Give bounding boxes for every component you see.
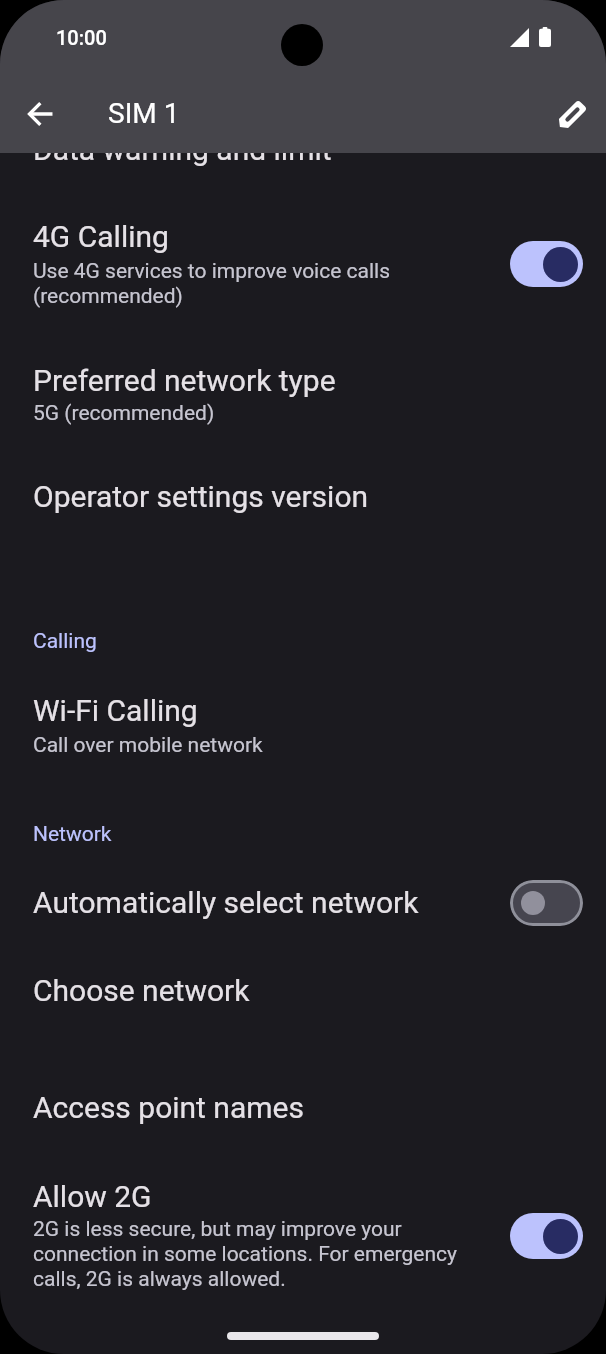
button[interactable]: Wi-Fi Calling — [0, 688, 606, 763]
staticText: Operator settings version — [33, 480, 369, 514]
staticText: Wi-Fi Calling — [33, 694, 198, 728]
staticText: Data warning and limit — [33, 133, 332, 167]
staticText: Preferred network type — [33, 364, 336, 398]
staticText: Call over mobile network — [33, 732, 263, 757]
button[interactable]: Choose network — [0, 968, 606, 1014]
staticText: SIM 1 — [108, 97, 180, 130]
button[interactable]: Switch on — [510, 1213, 583, 1259]
staticText: Use 4G services to improve voice calls (… — [33, 258, 445, 308]
staticText: 2G is less secure, but may improve your … — [33, 1216, 465, 1291]
button[interactable]: Automatically select network — [0, 874, 606, 932]
button[interactable]: Preferred network type — [0, 358, 606, 431]
button[interactable]: Switch off — [510, 880, 583, 926]
staticText: Choose network — [33, 974, 250, 1008]
button[interactable]: Edit — [540, 84, 602, 146]
staticText: Access point names — [33, 1091, 304, 1125]
staticText: 4G Calling — [33, 220, 169, 254]
button[interactable]: Allow 2G — [0, 1174, 606, 1297]
button[interactable]: Access point names — [0, 1085, 606, 1131]
button[interactable]: Back — [10, 83, 72, 145]
staticText: Allow 2G — [33, 1180, 152, 1214]
button[interactable]: Operator settings version — [0, 474, 606, 520]
staticText: Calling — [33, 629, 97, 654]
staticText: Network — [33, 822, 112, 847]
staticText: 10:00 — [56, 26, 107, 49]
button[interactable]: Switch on — [510, 241, 583, 287]
staticText: 5G (recommended) — [33, 400, 215, 425]
staticText: Automatically select network — [33, 886, 510, 920]
button[interactable]: 4G Calling — [0, 212, 606, 316]
